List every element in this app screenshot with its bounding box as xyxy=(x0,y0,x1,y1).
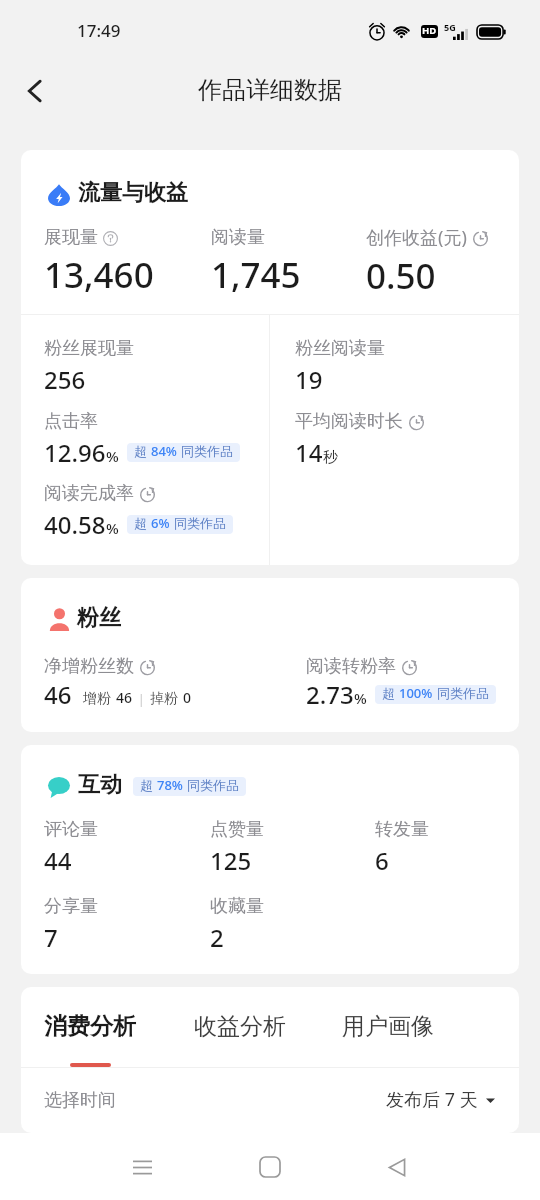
staticText: 作品详细数据 xyxy=(198,78,342,105)
staticText: 收藏量 xyxy=(210,897,264,917)
staticText: 6% xyxy=(151,517,170,532)
staticText: 同类作品 xyxy=(181,445,233,460)
staticText: % xyxy=(106,449,119,466)
button[interactable]: 发布后 7 天 xyxy=(386,1090,495,1111)
staticText: 发布后 7 天 xyxy=(386,1090,478,1111)
staticText: 7 xyxy=(44,926,58,953)
staticText: 评论量 xyxy=(44,820,98,840)
staticText: 粉丝展现量 xyxy=(44,339,134,359)
staticText: % xyxy=(106,521,119,538)
staticText: 256 xyxy=(44,368,86,395)
staticText: 超 xyxy=(134,517,147,532)
staticText: 12.96 xyxy=(44,441,106,468)
staticText: 流量与收益 xyxy=(78,182,188,207)
staticText: 44 xyxy=(44,849,72,876)
button[interactable]: Back xyxy=(371,1141,423,1193)
staticText: 净增粉丝数 xyxy=(44,657,134,677)
staticText: 78% xyxy=(157,779,183,794)
button[interactable]: Back xyxy=(13,69,57,113)
staticText: 6 xyxy=(375,849,389,876)
staticText: 40.58 xyxy=(44,513,106,540)
staticText: 84% xyxy=(151,445,177,460)
staticText: 0.50 xyxy=(366,258,436,297)
staticText: 点赞量 xyxy=(210,820,264,840)
staticText: 阅读完成率 xyxy=(44,484,134,504)
staticText: 超 xyxy=(134,445,147,460)
staticText: 粉丝阅读量 xyxy=(295,339,385,359)
button[interactable]: Recent apps xyxy=(116,1141,168,1193)
staticText: 同类作品 xyxy=(187,779,239,794)
button[interactable]: 收益分析 xyxy=(194,1015,286,1067)
staticText: 125 xyxy=(210,849,252,876)
staticText: 阅读转粉率 xyxy=(306,657,396,677)
staticText: 19 xyxy=(295,368,323,395)
staticText: 秒 xyxy=(323,449,338,466)
staticText: 100% xyxy=(399,687,433,702)
staticText: 2 xyxy=(210,926,224,953)
staticText: 同类作品 xyxy=(437,687,489,702)
staticText: 用户画像 xyxy=(342,1015,434,1041)
staticText: 消费分析 xyxy=(44,1015,136,1041)
staticText: | xyxy=(138,693,145,706)
staticText: HD xyxy=(422,26,437,37)
staticText: 5G xyxy=(444,23,456,33)
staticText: 增粉 xyxy=(83,691,111,707)
staticText: 点击率 xyxy=(44,412,98,432)
staticText: 掉粉 xyxy=(150,691,178,707)
button[interactable]: 消费分析 xyxy=(44,1015,136,1067)
staticText: 阅读量 xyxy=(211,228,265,248)
staticText: 17:49 xyxy=(77,22,121,41)
staticText: 超 xyxy=(140,779,153,794)
staticText: 2.73 xyxy=(306,683,354,710)
staticText: 超 xyxy=(382,687,395,702)
staticText: 14 xyxy=(295,441,323,468)
staticText: 创作收益(元) xyxy=(366,228,467,249)
staticText: 收益分析 xyxy=(194,1015,286,1041)
staticText: 粉丝 xyxy=(77,607,121,632)
staticText: 13,460 xyxy=(44,257,154,296)
staticText: 平均阅读时长 xyxy=(295,412,403,432)
staticText: 1,745 xyxy=(211,257,301,296)
button[interactable]: 用户画像 xyxy=(342,1015,434,1067)
staticText: 选择时间 xyxy=(44,1091,116,1111)
staticText: 46 xyxy=(44,683,72,710)
staticText: 展现量 xyxy=(44,228,98,248)
staticText: 互动 xyxy=(78,774,122,799)
staticText: % xyxy=(354,691,367,708)
staticText: 同类作品 xyxy=(174,517,226,532)
button[interactable]: Home xyxy=(244,1141,296,1193)
staticText: 0 xyxy=(183,691,192,707)
staticText: 转发量 xyxy=(375,820,429,840)
staticText: 46 xyxy=(116,691,133,707)
staticText: 分享量 xyxy=(44,897,98,917)
